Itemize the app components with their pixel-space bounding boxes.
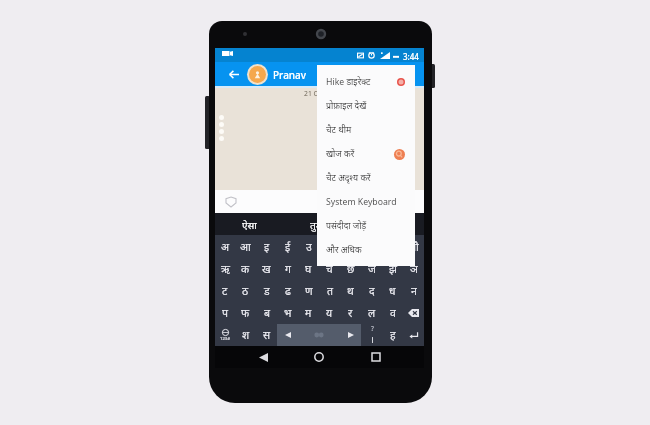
staticText: प	[222, 306, 228, 320]
staticText: ए	[348, 240, 354, 254]
button[interactable]: ठ	[235, 280, 256, 302]
staticText: ब	[264, 306, 270, 320]
staticText: और अधिक	[326, 244, 362, 256]
button[interactable]: श	[235, 324, 256, 346]
button[interactable]: औ	[403, 235, 424, 258]
button[interactable]: ऐसा	[215, 213, 284, 236]
staticText: ध	[389, 284, 396, 298]
staticText: ह	[390, 328, 396, 342]
button[interactable]: ब	[256, 302, 277, 324]
staticText: ठ	[242, 284, 249, 298]
button[interactable]: System Keyboard	[317, 190, 415, 214]
staticText: Hike डाइरेक्ट	[326, 76, 371, 88]
button[interactable]: स	[256, 324, 277, 346]
button[interactable]: आ	[235, 235, 256, 258]
button[interactable]: छ	[340, 258, 361, 280]
staticText: घ	[305, 262, 312, 276]
button[interactable]: क	[235, 258, 256, 280]
button[interactable]: Back	[249, 346, 277, 368]
button[interactable]: य	[319, 302, 340, 324]
button[interactable]: पसंदीदा जोड़ें	[317, 214, 415, 238]
button[interactable]: त	[319, 280, 340, 302]
button[interactable]: Backspace	[403, 302, 424, 324]
button[interactable]: उ	[298, 235, 319, 258]
button[interactable]: Move cursor right	[340, 324, 361, 346]
button[interactable]: Move cursor left	[277, 324, 298, 346]
button[interactable]: प्रोफ़ाइल देखें	[317, 94, 415, 118]
staticText: ?	[371, 324, 374, 333]
button[interactable]: Space	[298, 324, 340, 346]
staticText: उ	[306, 240, 312, 254]
button[interactable]: भ	[277, 302, 298, 324]
button[interactable]: ह	[382, 324, 403, 346]
button[interactable]: ढ	[277, 280, 298, 302]
button[interactable]: Home	[305, 346, 333, 368]
button[interactable]: ई	[277, 235, 298, 258]
staticText: 123#	[220, 336, 230, 342]
button[interactable]: घ	[298, 258, 319, 280]
button[interactable]: झ	[382, 258, 403, 280]
staticText: व	[390, 306, 396, 320]
button[interactable]: अ	[215, 235, 235, 258]
button[interactable]: ल	[361, 302, 382, 324]
button[interactable]: Back	[224, 63, 244, 85]
button[interactable]: र	[340, 302, 361, 324]
button[interactable]: व	[382, 302, 403, 324]
staticText: चैट अदृश्य करें	[326, 172, 371, 184]
button[interactable]: Recent apps	[362, 346, 390, 368]
staticText: चैट थीम	[326, 124, 352, 136]
button[interactable]: Sticker	[225, 196, 237, 208]
staticText: श	[242, 328, 250, 342]
staticText: प्रोफ़ाइल देखें	[326, 100, 367, 112]
button[interactable]: ऊ	[319, 235, 340, 258]
staticText: ट	[222, 284, 228, 298]
staticText: System Keyboard	[326, 196, 397, 208]
button[interactable]: चैट थीम	[317, 118, 415, 142]
button[interactable]: म	[298, 302, 319, 324]
staticText: औ	[408, 240, 419, 254]
button[interactable]: और अधिक	[317, 238, 415, 262]
staticText: ड	[264, 284, 270, 298]
staticText: इ	[264, 240, 270, 254]
button[interactable]: प	[215, 302, 235, 324]
button[interactable]: ?	[361, 324, 382, 346]
button[interactable]: Enter	[403, 324, 424, 346]
staticText: ञ	[410, 262, 418, 276]
staticText: ण	[305, 284, 313, 298]
button[interactable]: ज	[361, 258, 382, 280]
staticText: ई	[285, 240, 291, 254]
button[interactable]: च	[319, 258, 340, 280]
button[interactable]: द	[361, 280, 382, 302]
staticText: त	[327, 284, 333, 298]
button[interactable]: चैट अदृश्य करें	[317, 166, 415, 190]
button[interactable]: तुमसे	[284, 213, 354, 236]
button[interactable]: हमें	[354, 213, 424, 236]
button[interactable]: ऋ	[215, 258, 235, 280]
button[interactable]: Hike डाइरेक्ट	[317, 70, 415, 94]
button[interactable]: 123#	[215, 324, 235, 346]
staticText: 21 October	[304, 89, 340, 98]
button[interactable]: Pranav	[247, 62, 357, 87]
button[interactable]: ड	[256, 280, 277, 302]
button[interactable]: इ	[256, 235, 277, 258]
button[interactable]: ख	[256, 258, 277, 280]
button[interactable]: न	[403, 280, 424, 302]
button[interactable]: ञ	[403, 258, 424, 280]
staticText: अ	[221, 240, 230, 254]
button[interactable]: खोज करें	[317, 142, 415, 166]
staticText: ।	[370, 333, 374, 346]
button[interactable]: ऐ	[361, 235, 382, 258]
button[interactable]: ए	[340, 235, 361, 258]
button[interactable]: फ	[235, 302, 256, 324]
button[interactable]: ण	[298, 280, 319, 302]
button[interactable]: ट	[215, 280, 235, 302]
staticText: पसंदीदा जोड़ें	[326, 220, 367, 232]
staticText: स	[263, 328, 271, 342]
button[interactable]: ग	[277, 258, 298, 280]
staticText: आ	[240, 240, 251, 254]
staticText: ऊ	[325, 240, 334, 254]
button[interactable]: ध	[382, 280, 403, 302]
button[interactable]: थ	[340, 280, 361, 302]
